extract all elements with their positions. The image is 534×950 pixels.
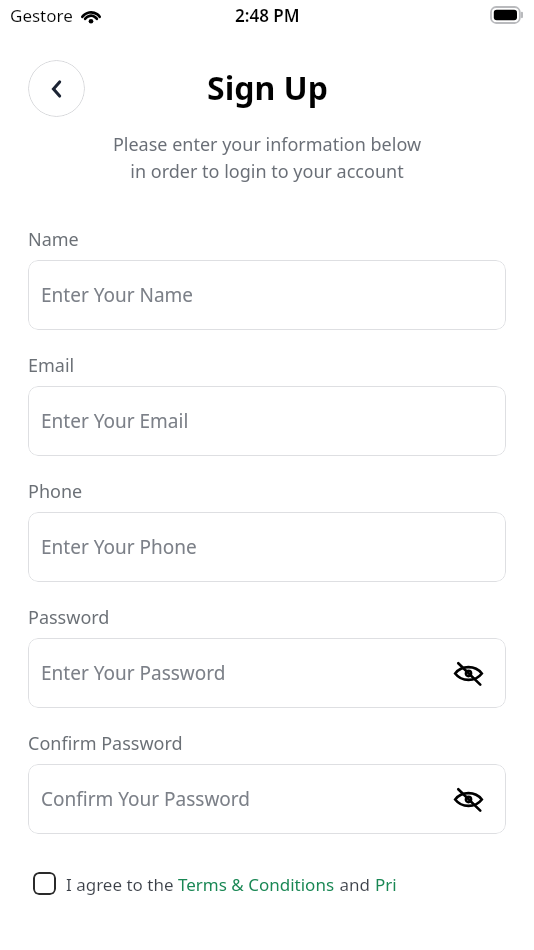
button[interactable]: Confirm Your Password: [28, 764, 506, 834]
staticText: Enter Your Phone: [41, 534, 197, 560]
button[interactable]: Enter Your Password: [28, 638, 506, 708]
staticText: 2:48 PM: [235, 4, 300, 27]
button[interactable]: Enter Your Phone: [28, 512, 506, 582]
staticText: Sign Up: [207, 66, 328, 110]
button[interactable]: Pri: [375, 873, 397, 896]
staticText: and: [335, 873, 375, 896]
staticText: Name: [28, 227, 79, 252]
button[interactable]: Agree to terms: [33, 872, 501, 895]
staticText: Confirm Your Password: [41, 786, 251, 812]
staticText: Phone: [28, 479, 83, 504]
staticText: Password: [28, 605, 110, 630]
button[interactable]: Back: [28, 60, 85, 117]
other: Agree to terms: [33, 872, 56, 895]
staticText: Confirm Password: [28, 731, 183, 756]
button[interactable]: Show password: [450, 655, 486, 691]
staticText: I agree to the: [66, 873, 178, 896]
staticText: Gestore: [10, 4, 73, 27]
staticText: Email: [28, 353, 75, 378]
staticText: Enter Your Email: [41, 408, 189, 434]
button[interactable]: Enter Your Name: [28, 260, 506, 330]
button[interactable]: Terms & Conditions: [178, 873, 335, 896]
staticText: Enter Your Password: [41, 660, 226, 686]
staticText: Please enter your information below in o…: [24, 132, 510, 183]
staticText: Enter Your Name: [41, 282, 194, 308]
button[interactable]: Enter Your Email: [28, 386, 506, 456]
button[interactable]: Show password: [450, 781, 486, 817]
